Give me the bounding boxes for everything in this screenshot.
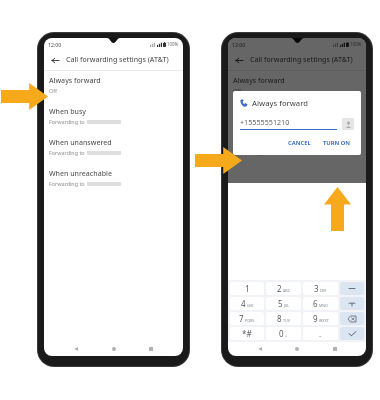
staticText: GHI [247,303,254,308]
button[interactable]: CANCEL [285,138,314,148]
staticText: 12:00 [232,41,246,48]
staticText: Off [49,87,57,94]
button[interactable]: 0 [266,327,301,340]
staticText: Forwarding to [49,118,85,125]
staticText: CANCEL [288,139,311,147]
staticText: +15555551210 [240,117,290,127]
button[interactable]: Back [70,343,82,355]
staticText: 12:00 [48,41,62,48]
button[interactable]: . [303,327,338,340]
button[interactable]: 2 [266,282,301,295]
staticText: . [319,328,322,339]
staticText: 2 [277,283,282,294]
button[interactable]: When busy [228,107,366,125]
staticText: *# [242,328,252,339]
button[interactable]: Home [108,343,120,355]
staticText: Always forward [49,76,101,86]
button[interactable]: Backspace [340,312,364,325]
staticText: 3 [314,283,319,294]
button[interactable]: 5 [266,297,301,310]
staticText: Forwarding to [233,149,269,156]
staticText: DEF [320,288,327,293]
staticText: 1 [245,283,250,294]
button[interactable]: Home [291,343,303,355]
button[interactable]: Back [254,343,266,355]
staticText: 100% [350,41,362,47]
button[interactable]: 7 [230,312,264,325]
staticText: When unreachable [49,169,112,179]
staticText: Call forwarding settings (AT&T) [66,55,169,65]
button[interactable]: Back [232,53,246,67]
button[interactable]: Recents [145,343,157,355]
staticText: Forwarding to [49,149,85,156]
staticText: JKL [284,303,290,308]
button[interactable]: 9 [303,312,338,325]
button[interactable]: Always forward [228,76,366,94]
button[interactable]: TURN ON [320,138,354,148]
staticText: 100% [167,41,179,47]
staticText: 4 [241,298,246,309]
staticText: When busy [49,107,87,117]
button[interactable]: When unreachable [44,169,183,187]
button[interactable]: Pause [340,297,364,310]
staticText: When busy [233,107,271,117]
button[interactable]: 8 [266,312,301,325]
button[interactable]: Enter [340,327,364,340]
button[interactable]: Always forward [44,76,183,94]
button[interactable]: Back [48,53,62,67]
button[interactable]: When unanswered [228,138,366,156]
staticText: Forwarding to [49,180,85,187]
staticText: ABC [283,288,290,293]
button[interactable]: 1 [230,282,264,295]
staticText: TURN ON [323,139,351,147]
button[interactable]: 4 [230,297,264,310]
button[interactable]: When busy [44,107,183,125]
button[interactable]: 3 [303,282,338,295]
staticText: PQRS [245,318,255,323]
staticText: Forwarding to [233,118,269,125]
staticText: + [285,333,288,338]
staticText: When unanswered [233,138,296,148]
staticText: 8 [277,313,282,324]
button[interactable]: Dash [340,282,364,295]
staticText: WXYZ [319,318,329,323]
staticText: 9 [313,313,318,324]
staticText: MNO [319,303,328,308]
button[interactable]: Pick contact [342,118,354,130]
staticText: 0 [279,328,284,339]
staticText: Off [233,87,241,94]
staticText: 6 [313,298,318,309]
button[interactable]: 6 [303,297,338,310]
staticText: Call forwarding settings (AT&T) [250,55,353,65]
staticText: When unanswered [49,138,112,148]
staticText: TUV [283,318,290,323]
staticText: 7 [239,313,244,324]
staticText: Always forward [252,98,308,108]
button[interactable]: *# [230,327,264,340]
staticText: 5 [278,298,283,309]
button[interactable]: Recents [329,343,341,355]
button[interactable]: When unanswered [44,138,183,156]
staticText: Always forward [233,76,285,86]
